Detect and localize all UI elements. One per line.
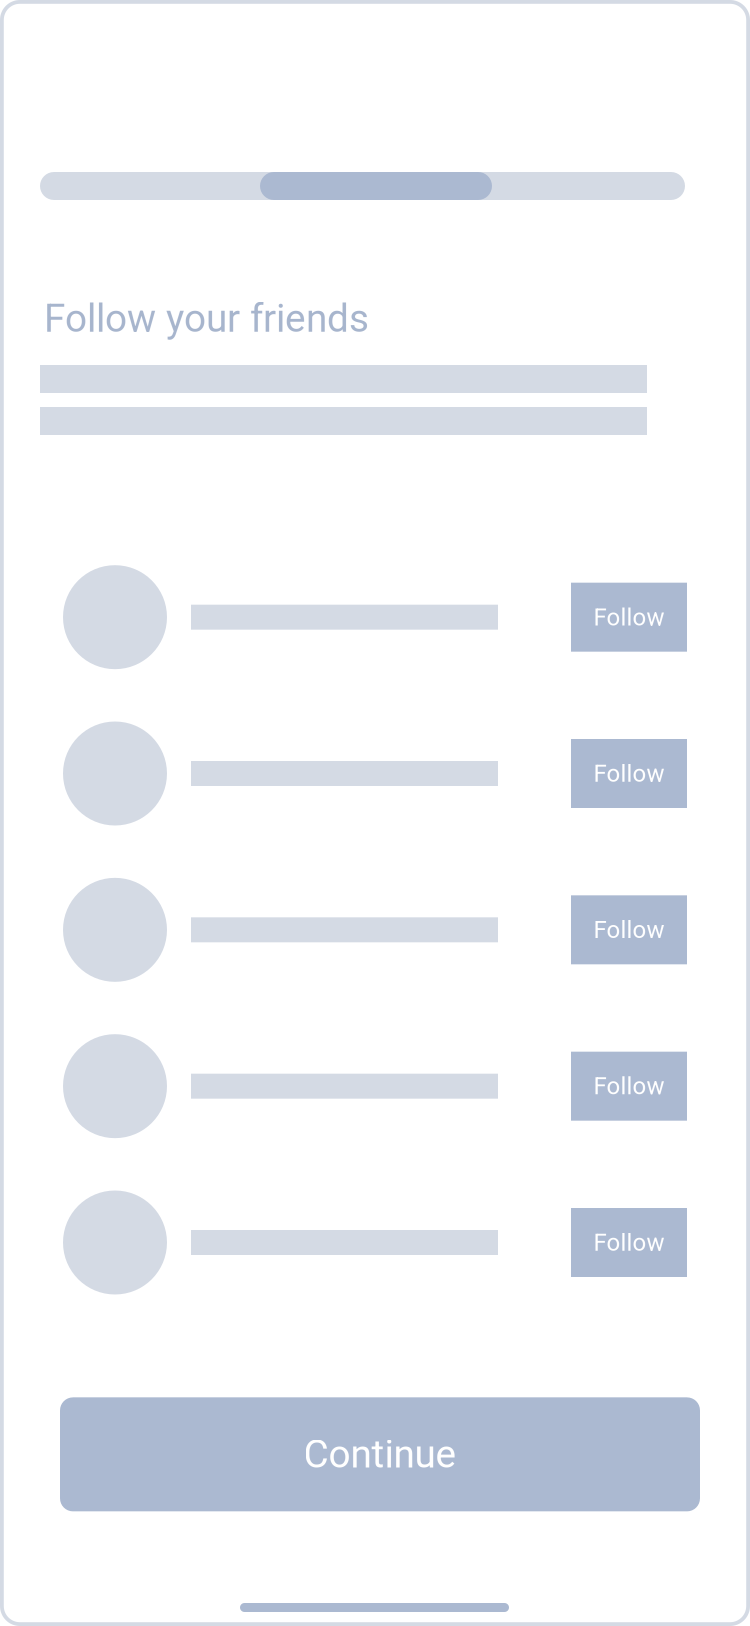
button[interactable]: Follow	[571, 895, 687, 964]
button[interactable]: Follow	[571, 583, 687, 652]
button[interactable]: Suggested account	[63, 1190, 498, 1294]
button[interactable]: Suggested account	[63, 1034, 498, 1138]
button[interactable]: Follow	[571, 1208, 687, 1277]
button[interactable]: Continue	[60, 1397, 700, 1511]
staticText: Follow	[593, 759, 664, 787]
button[interactable]: Follow	[571, 1052, 687, 1121]
staticText: Follow	[593, 603, 664, 631]
button[interactable]: Suggested account	[63, 565, 498, 669]
staticText: Continue	[303, 1432, 456, 1477]
staticText: Follow	[593, 1072, 664, 1100]
staticText: Follow	[593, 1228, 664, 1256]
button[interactable]: Suggested account	[63, 721, 498, 825]
staticText: Follow	[593, 916, 664, 944]
button[interactable]: Suggested account	[63, 878, 498, 982]
staticText: Follow your friends	[44, 296, 369, 341]
button[interactable]: Follow	[571, 739, 687, 808]
